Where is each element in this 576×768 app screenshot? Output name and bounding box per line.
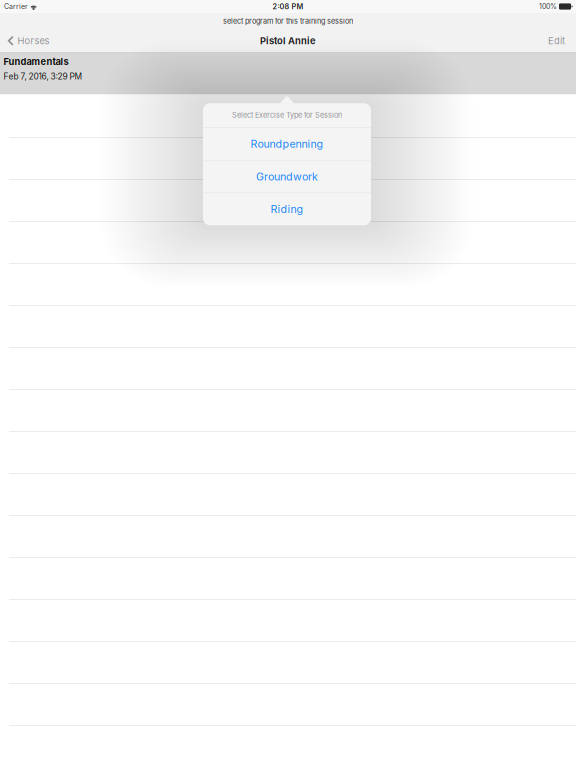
staticText: Horses bbox=[17, 35, 49, 46]
staticText: Carrier bbox=[4, 2, 28, 11]
button[interactable]: Horses bbox=[0, 29, 55, 52]
button[interactable]: Riding bbox=[203, 193, 371, 225]
button[interactable]: Edit bbox=[537, 29, 576, 52]
staticText: 100% bbox=[539, 2, 557, 11]
staticText: select program for this training session bbox=[223, 17, 353, 25]
staticText: Pistol Annie bbox=[260, 35, 316, 46]
staticText: Roundpenning bbox=[250, 137, 323, 150]
button[interactable]: Roundpenning bbox=[203, 128, 371, 160]
staticText: Fundamentals bbox=[3, 56, 68, 67]
staticText: Riding bbox=[270, 203, 303, 216]
staticText: Groundwork bbox=[256, 170, 318, 183]
staticText: Feb 7, 2016, 3:29 PM bbox=[3, 71, 82, 81]
staticText: Edit bbox=[548, 35, 565, 46]
staticText: Select Exercise Type for Session bbox=[232, 111, 342, 120]
staticText: 2:08 PM bbox=[272, 2, 303, 11]
button[interactable]: Groundwork bbox=[203, 160, 371, 193]
